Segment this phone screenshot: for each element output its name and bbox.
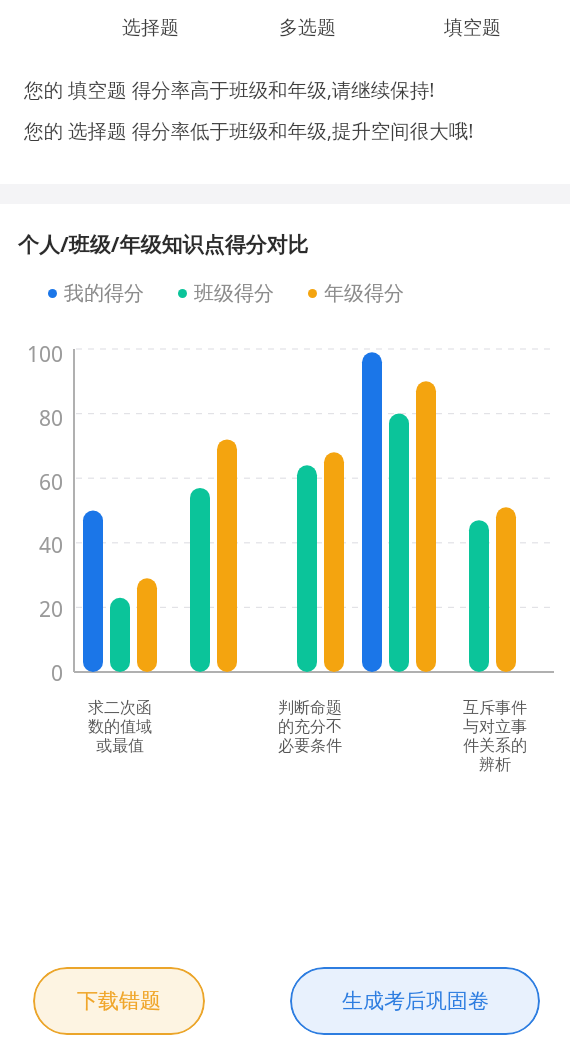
staticText: 20 — [39, 595, 64, 624]
staticText: 您的 选择题 得分率低于班级和年级,提升空间很大哦! — [24, 117, 546, 144]
staticText: 您的 填空题 得分率高于班级和年级,请继续保持! — [24, 76, 546, 103]
staticText: 40 — [39, 531, 64, 560]
staticText: 年级得分 — [324, 281, 404, 306]
button[interactable]: 年级得分 — [308, 281, 404, 306]
staticText: 班级得分 — [194, 281, 274, 306]
staticText: 下载错题 — [77, 988, 161, 1014]
button[interactable]: 班级得分 — [178, 281, 274, 306]
staticText: 选择题 — [122, 16, 179, 40]
button[interactable]: 下载错题 — [33, 967, 205, 1035]
staticText: 我的得分 — [64, 281, 144, 306]
staticText: 100 — [27, 340, 64, 369]
staticText: 80 — [39, 404, 64, 433]
staticText: 生成考后巩固卷 — [342, 988, 489, 1014]
staticText: 0 — [51, 659, 64, 688]
staticText: 填空题 — [444, 16, 501, 40]
button[interactable]: 生成考后巩固卷 — [290, 967, 540, 1035]
button[interactable]: 选择题 — [105, 12, 195, 44]
button[interactable]: 多选题 — [262, 12, 352, 44]
staticText: 判断命题 的充分不 必要条件 — [278, 698, 342, 756]
staticText: 个人/班级/年级知识点得分对比 — [18, 230, 309, 259]
staticText: 求二次函 数的值域 或最值 — [88, 698, 152, 756]
button[interactable]: 我的得分 — [48, 281, 144, 306]
staticText: 60 — [39, 468, 64, 497]
staticText: 多选题 — [279, 16, 336, 40]
button[interactable]: 填空题 — [427, 12, 517, 44]
staticText: 互斥事件 与对立事 件关系的 辨析 — [463, 698, 527, 775]
